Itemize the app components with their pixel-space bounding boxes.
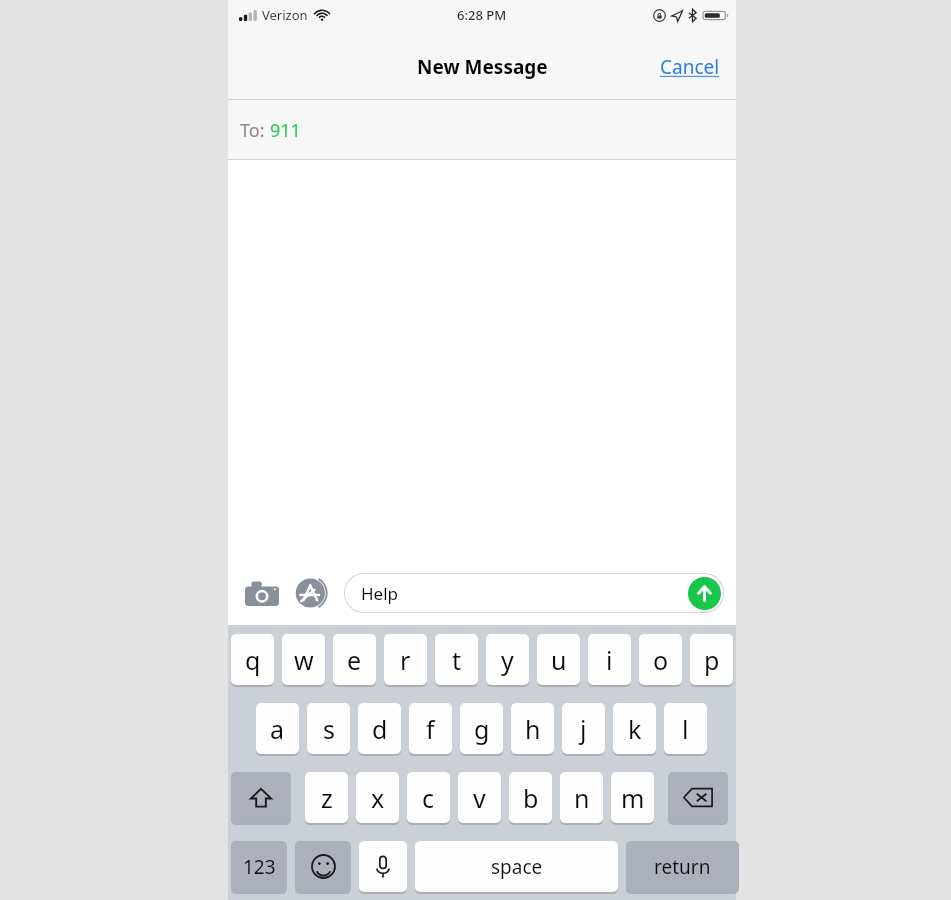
button[interactable]: Shift: [231, 772, 291, 823]
staticText: j: [580, 712, 587, 746]
button[interactable]: c: [407, 772, 450, 823]
button[interactable]: s: [307, 703, 350, 754]
button[interactable]: q: [231, 634, 274, 685]
staticText: f: [426, 712, 435, 746]
staticText: i: [606, 643, 613, 677]
button[interactable]: j: [562, 703, 605, 754]
button[interactable]: h: [511, 703, 554, 754]
button[interactable]: l: [664, 703, 707, 754]
button[interactable]: u: [537, 634, 580, 685]
staticText: Help: [361, 582, 399, 605]
button[interactable]: b: [509, 772, 552, 823]
button[interactable]: Send: [688, 577, 721, 610]
staticText: o: [653, 643, 669, 677]
button[interactable]: space: [415, 841, 618, 892]
staticText: c: [422, 781, 435, 815]
button[interactable]: d: [358, 703, 401, 754]
button[interactable]: 123: [231, 841, 287, 892]
staticText: t: [452, 643, 462, 677]
button[interactable]: Emoji: [295, 841, 351, 892]
button[interactable]: t: [435, 634, 478, 685]
staticText: k: [628, 712, 642, 746]
staticText: q: [245, 643, 261, 677]
staticText: a: [270, 712, 285, 746]
button[interactable]: Dictation: [359, 841, 407, 892]
button[interactable]: i: [588, 634, 631, 685]
button[interactable]: k: [613, 703, 656, 754]
staticText: v: [473, 781, 486, 815]
staticText: g: [474, 712, 490, 746]
button[interactable]: Take photo: [242, 573, 282, 613]
staticText: z: [321, 781, 333, 815]
button[interactable]: p: [690, 634, 733, 685]
staticText: m: [621, 781, 645, 815]
staticText: To:: [240, 118, 270, 143]
staticText: b: [523, 781, 539, 815]
button[interactable]: f: [409, 703, 452, 754]
staticText: l: [682, 712, 689, 746]
button[interactable]: z: [305, 772, 348, 823]
staticText: h: [525, 712, 541, 746]
staticText: 6:28 PM: [457, 6, 507, 24]
staticText: d: [372, 712, 388, 746]
staticText: Verizon: [262, 6, 308, 24]
staticText: x: [371, 781, 385, 815]
button[interactable]: a: [256, 703, 299, 754]
staticText: r: [400, 643, 411, 677]
button[interactable]: return: [626, 841, 739, 892]
button[interactable]: g: [460, 703, 503, 754]
staticText: 123: [243, 854, 276, 880]
button[interactable]: y: [486, 634, 529, 685]
button[interactable]: r: [384, 634, 427, 685]
button[interactable]: w: [282, 634, 325, 685]
button[interactable]: m: [611, 772, 654, 823]
staticText: y: [501, 643, 514, 677]
button[interactable]: Backspace: [668, 772, 728, 823]
staticText: Cancel: [660, 54, 720, 80]
button[interactable]: Help: [344, 573, 724, 613]
button[interactable]: x: [356, 772, 399, 823]
staticText: New Message: [417, 54, 548, 80]
button[interactable]: n: [560, 772, 603, 823]
staticText: 911: [270, 118, 301, 143]
button[interactable]: o: [639, 634, 682, 685]
staticText: u: [551, 643, 567, 677]
staticText: p: [704, 643, 720, 677]
staticText: e: [347, 643, 362, 677]
staticText: space: [491, 854, 543, 880]
staticText: w: [294, 643, 314, 677]
staticText: s: [323, 712, 335, 746]
button[interactable]: Cancel: [644, 46, 736, 88]
button[interactable]: To:: [228, 100, 736, 160]
button[interactable]: App Store: [292, 573, 332, 613]
staticText: n: [574, 781, 590, 815]
staticText: return: [654, 854, 711, 880]
button[interactable]: e: [333, 634, 376, 685]
button[interactable]: v: [458, 772, 501, 823]
